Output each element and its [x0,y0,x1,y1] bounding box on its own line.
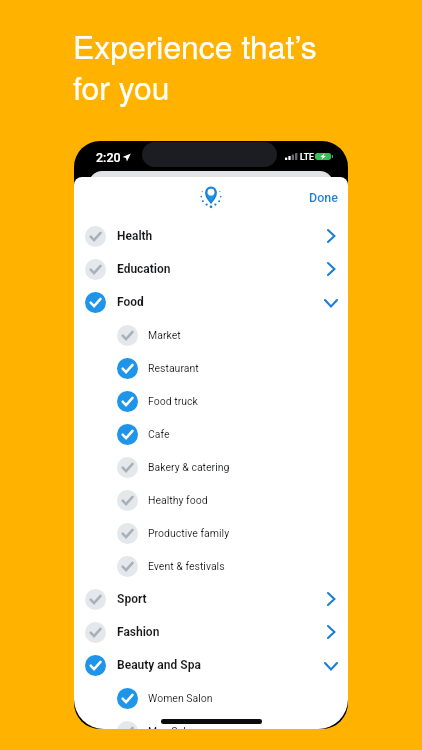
button[interactable]: Health [74,220,348,252]
staticText: Market [148,329,181,341]
button[interactable]: Beauty and Spa [74,649,348,681]
button[interactable]: Healthy food [74,484,348,516]
staticText: Women Salon [148,692,213,704]
button[interactable]: Market [74,319,348,351]
staticText: Food truck [148,395,198,407]
other: Expand category [323,624,339,640]
other: Expand category [323,261,339,277]
staticText: LTE [300,152,314,162]
button[interactable]: Sport [74,583,348,615]
staticText: Fashion [117,625,160,639]
other: Collapse category [323,657,339,673]
staticText: Cafe [148,428,170,440]
staticText: Healthy food [148,494,208,506]
button[interactable]: Productive family [74,517,348,549]
other: Expand category [323,591,339,607]
staticText: Restaurant [148,362,199,374]
button[interactable]: Cafe [74,418,348,450]
button[interactable]: Event & festivals [74,550,348,582]
button[interactable]: Education [74,253,348,285]
other: Location [197,185,225,213]
staticText: Man Salon [148,725,198,729]
button[interactable]: Restaurant [74,352,348,384]
staticText: Food [117,295,144,309]
button[interactable]: Done [302,184,345,211]
button[interactable]: Bakery & catering [74,451,348,483]
staticText: Sport [117,592,147,606]
other: Expand category [323,228,339,244]
staticText: 2:20 [96,150,121,165]
staticText: Beauty and Spa [117,658,201,672]
staticText: Event & festivals [148,560,225,572]
button[interactable]: Man Salon [74,715,348,729]
staticText: Experience that’s for you [73,22,317,109]
button[interactable]: Food truck [74,385,348,417]
button[interactable]: Food [74,286,348,318]
other: Collapse category [323,294,339,310]
staticText: Productive family [148,527,230,539]
button[interactable]: Women Salon [74,682,348,714]
staticText: Health [117,229,153,243]
staticText: Done [309,190,338,205]
button[interactable]: Fashion [74,616,348,648]
staticText: Bakery & catering [148,461,230,473]
staticText: Education [117,262,171,276]
